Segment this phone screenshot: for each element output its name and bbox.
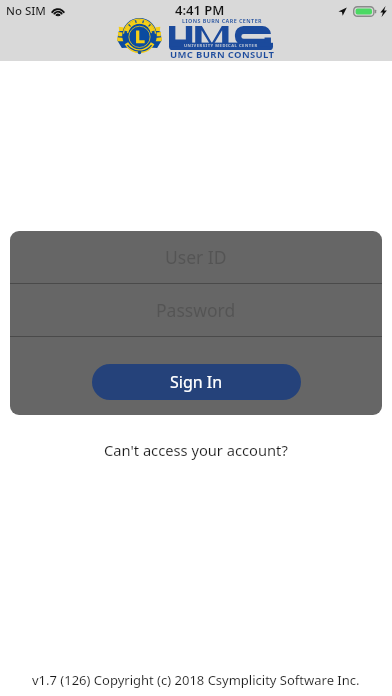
staticText: v1.7 (126) Copyright (c) 2018 Csymplicit… <box>32 671 360 689</box>
staticText: Password <box>156 298 236 322</box>
staticText: User ID <box>165 245 227 269</box>
staticText: 4:41 PM <box>175 1 225 19</box>
staticText: No SIM <box>6 3 46 19</box>
staticText: Sign In <box>170 371 223 393</box>
button[interactable]: Can't access your account? <box>94 436 298 464</box>
staticText: Can't access your account? <box>104 440 288 460</box>
button[interactable]: User ID field <box>10 231 382 283</box>
button[interactable]: Sign In <box>92 364 301 400</box>
staticText: UNIVERSITY MEDICAL CENTER <box>184 43 258 49</box>
staticText: LIONS BURN CARE CENTER <box>182 17 263 24</box>
staticText: UMC BURN CONSULT <box>170 48 275 61</box>
